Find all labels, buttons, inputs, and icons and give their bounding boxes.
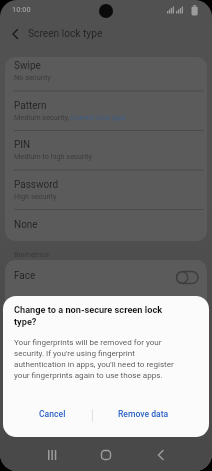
staticText: 10:00 xyxy=(12,5,31,14)
staticText: High security xyxy=(14,192,57,201)
staticText: Medium security, Current lock type xyxy=(14,113,126,122)
staticText: Remove data xyxy=(118,409,169,419)
staticText: Swipe xyxy=(14,60,41,72)
button[interactable] xyxy=(5,209,207,240)
staticText: Face xyxy=(14,270,36,282)
button[interactable] xyxy=(149,443,173,467)
staticText: Biometrics xyxy=(14,250,49,259)
staticText: type? xyxy=(14,316,37,327)
staticText: Your fingerprints will be removed for yo… xyxy=(14,337,162,346)
staticText: security. If you're using fingerprint xyxy=(14,348,135,357)
button[interactable] xyxy=(5,91,207,130)
button[interactable] xyxy=(175,270,201,285)
staticText: Pattern xyxy=(14,100,47,112)
staticText: Cancel xyxy=(39,409,66,419)
button[interactable]: Cancel xyxy=(13,402,92,426)
staticText: No security xyxy=(14,73,51,82)
staticText: Medium to high security xyxy=(14,152,92,161)
button[interactable] xyxy=(5,57,207,90)
staticText: authentication in apps, you'll need to r… xyxy=(14,359,174,368)
staticText: Change to a non-secure screen lock xyxy=(14,304,163,315)
button[interactable] xyxy=(5,170,207,209)
button[interactable] xyxy=(6,25,24,43)
staticText: Screen lock type xyxy=(28,28,103,40)
staticText: None xyxy=(14,219,38,231)
button[interactable] xyxy=(5,130,207,169)
staticText: your fingerprints again to use those app… xyxy=(14,370,163,379)
button[interactable] xyxy=(5,260,207,296)
staticText: Password xyxy=(14,179,59,191)
button[interactable] xyxy=(94,443,118,467)
button[interactable] xyxy=(38,443,62,467)
staticText: PIN xyxy=(14,139,31,151)
button[interactable]: Remove data xyxy=(94,402,193,426)
